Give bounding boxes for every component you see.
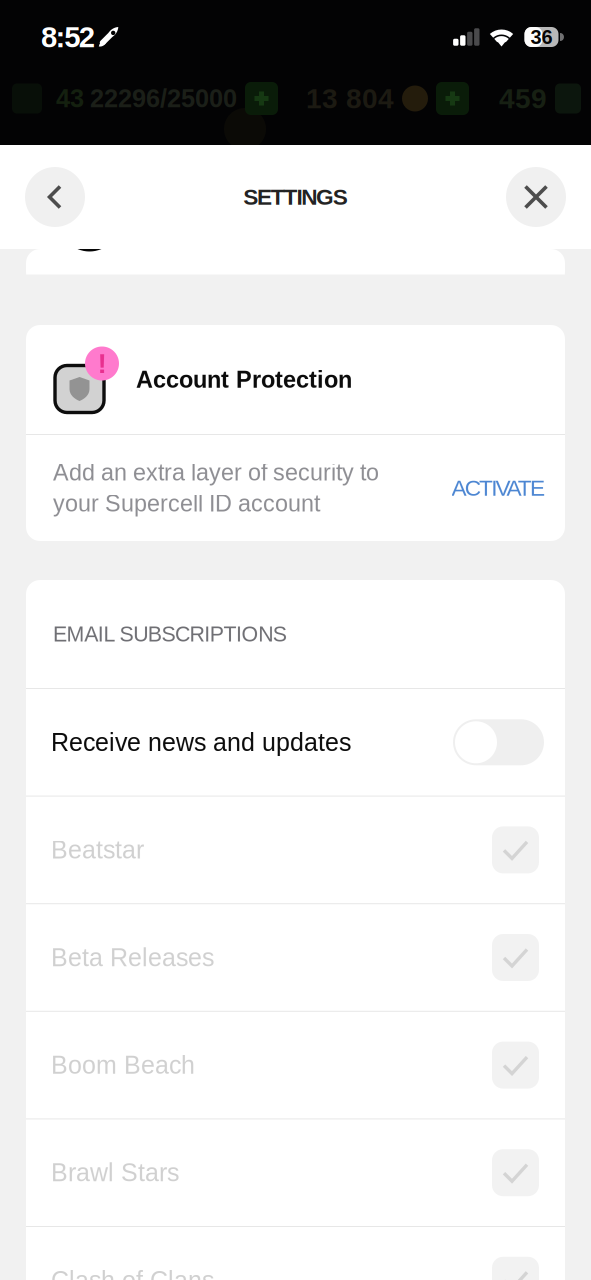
button[interactable]: ACTIVATE xyxy=(452,475,545,501)
staticText: 36 xyxy=(530,26,552,48)
staticText: Receive news and updates xyxy=(51,728,351,756)
button[interactable]: Back xyxy=(25,167,85,227)
button[interactable]: Receive news and updates xyxy=(26,689,565,796)
staticText: 8:52 xyxy=(41,21,95,53)
staticText: Clash of Clans xyxy=(51,1266,214,1280)
button[interactable]: Beta Releases xyxy=(26,904,565,1011)
button[interactable]: Beatstar xyxy=(26,797,565,903)
staticText: 13 804 xyxy=(306,83,394,114)
button[interactable]: Close xyxy=(506,167,566,227)
button[interactable]: Brawl Stars xyxy=(26,1119,565,1226)
staticText: Beta Releases xyxy=(51,944,214,971)
staticText: Brawl Stars xyxy=(51,1159,179,1187)
staticText: EMAIL SUBSCRIPTIONS xyxy=(53,622,287,646)
staticText: ! xyxy=(97,348,106,379)
staticText: Add an extra layer of security to your S… xyxy=(53,459,379,516)
staticText: Beatstar xyxy=(51,836,144,864)
button[interactable]: Boom Beach xyxy=(26,1012,565,1118)
staticText: 43 xyxy=(56,84,84,113)
staticText: 459 xyxy=(499,83,547,114)
staticText: Boom Beach xyxy=(51,1051,195,1079)
staticText: SETTINGS xyxy=(243,184,348,210)
staticText: ACTIVATE xyxy=(452,475,545,501)
button[interactable]: Clash of Clans xyxy=(26,1227,565,1280)
staticText: 22296/25000 xyxy=(90,84,237,113)
staticText: Account Protection xyxy=(136,366,352,393)
